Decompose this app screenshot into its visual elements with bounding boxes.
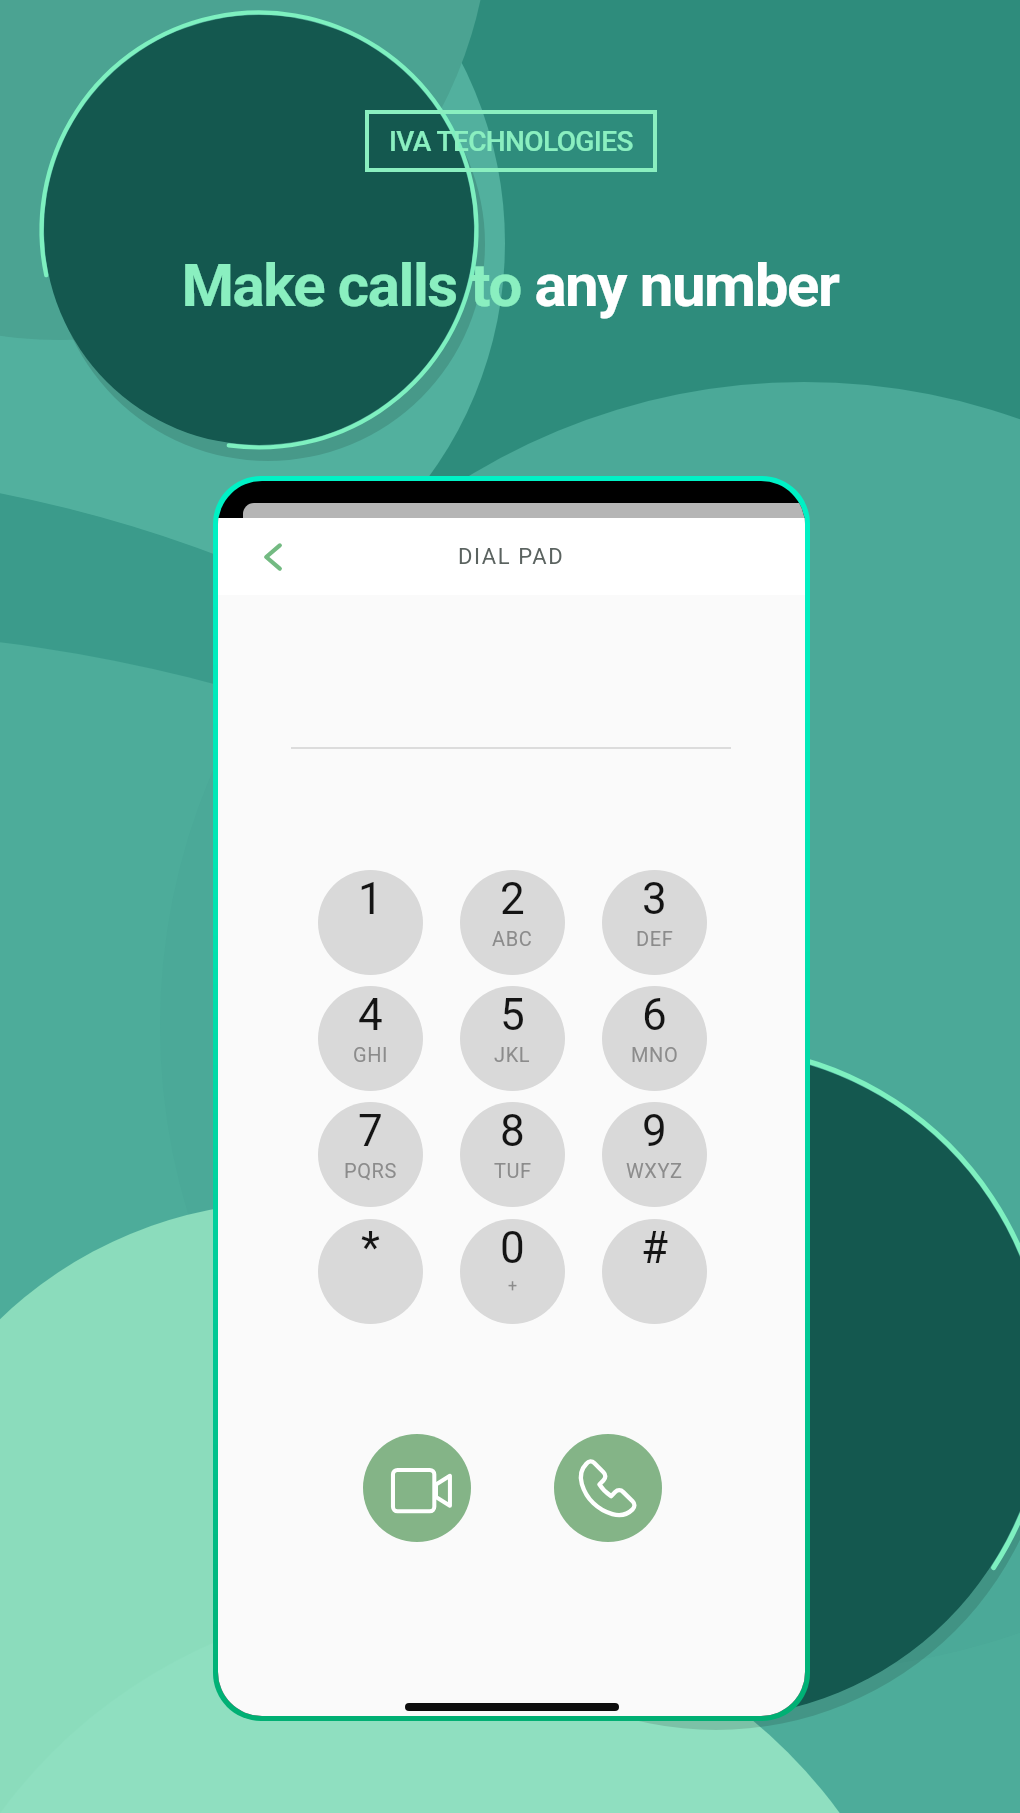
staticText: 1 [358,873,383,925]
button[interactable]: Back [246,530,300,584]
button[interactable]: Video call [363,1434,471,1542]
staticText: WXYZ [626,1159,683,1182]
staticText: GHI [353,1043,389,1066]
button[interactable]: # [602,1219,707,1324]
button[interactable]: 1 [318,870,423,975]
button[interactable]: 6 [602,986,707,1091]
button[interactable]: * [318,1219,423,1324]
button[interactable]: 7 [318,1102,423,1207]
staticText: 8 [500,1105,525,1157]
staticText: + [508,1276,518,1295]
staticText: 0 [500,1222,525,1274]
button[interactable]: 0 [460,1219,565,1324]
button[interactable]: 8 [460,1102,565,1207]
staticText: JKL [494,1043,531,1066]
staticText: 6 [642,989,667,1041]
button[interactable]: 3 [602,870,707,975]
staticText: Make calls to any number [181,250,839,320]
button[interactable]: 9 [602,1102,707,1207]
staticText: MNO [631,1043,679,1066]
button[interactable]: IVA TECHNOLOGIES [365,110,657,172]
staticText: DIAL PAD [458,544,565,570]
staticText: 2 [500,873,525,925]
staticText: 3 [642,873,667,925]
staticText: 7 [358,1105,383,1157]
staticText: 9 [642,1105,667,1157]
staticText: 4 [358,989,383,1041]
staticText: 5 [500,989,525,1041]
staticText: * [361,1222,380,1274]
staticText: DEF [636,927,674,950]
staticText: # [641,1222,669,1274]
button[interactable]: 4 [318,986,423,1091]
staticText: PQRS [344,1159,397,1182]
button[interactable]: Call [554,1434,662,1542]
staticText: IVA TECHNOLOGIES [389,125,633,158]
button[interactable]: 2 [460,870,565,975]
button[interactable]: 5 [460,986,565,1091]
staticText: TUF [494,1159,532,1182]
staticText: ABC [492,927,533,950]
